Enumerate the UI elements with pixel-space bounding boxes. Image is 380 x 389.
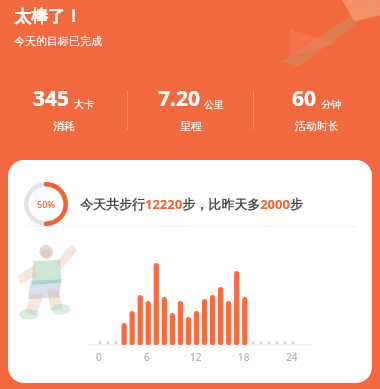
staticText: 7.20 (158, 84, 200, 113)
staticText: 消耗 (53, 119, 75, 133)
staticText: 6 (144, 350, 150, 364)
staticText: 今天共步行12220步，比昨天多2000步 (80, 195, 303, 213)
staticText: 活动时长 (295, 119, 339, 133)
staticText: 分钟 (321, 98, 341, 111)
staticText: 50% (37, 198, 55, 210)
staticText: 345 (33, 84, 70, 113)
staticText: 大卡 (74, 98, 94, 111)
button[interactable]: 7.20 (128, 80, 253, 133)
button[interactable]: 60 (254, 80, 379, 133)
staticText: 公里 (204, 98, 224, 111)
staticText: 0 (96, 350, 102, 364)
staticText: 太棒了！ (14, 6, 82, 27)
staticText: 18 (238, 350, 250, 364)
staticText: 今天的目标已完成 (14, 34, 102, 48)
staticText: 12 (190, 350, 202, 364)
button[interactable]: 50% (8, 160, 372, 383)
staticText: 60 (292, 84, 317, 113)
button[interactable]: 345 (0, 80, 127, 133)
staticText: 24 (286, 350, 298, 364)
staticText: 里程 (180, 119, 202, 133)
